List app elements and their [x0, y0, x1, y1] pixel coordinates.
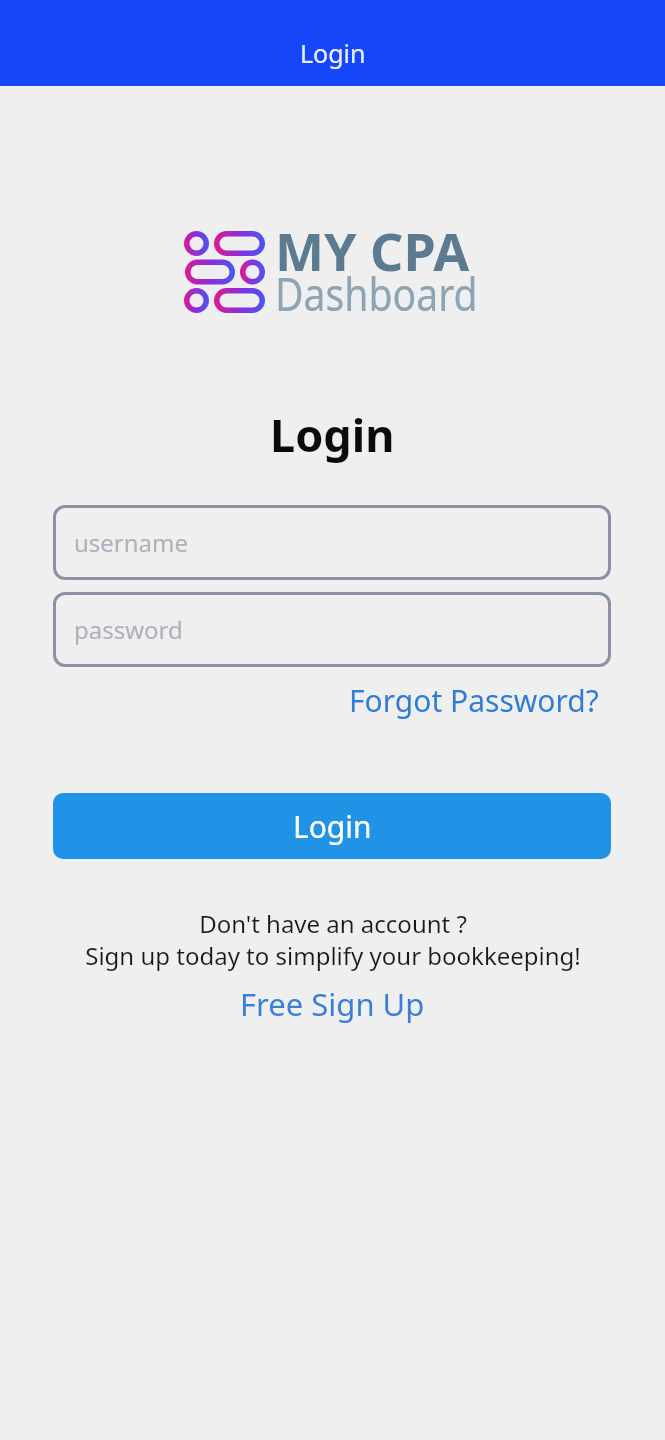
staticText: password — [74, 613, 183, 646]
staticText: Login — [293, 806, 372, 847]
staticText: Login — [270, 404, 395, 465]
button[interactable]: Forgot Password? — [349, 680, 599, 721]
staticText: username — [74, 526, 189, 559]
staticText: Forgot Password? — [349, 680, 599, 721]
staticText: Free Sign Up — [240, 983, 425, 1025]
button[interactable]: Free Sign Up — [240, 983, 425, 1025]
staticText: Dashboard — [275, 263, 478, 324]
button[interactable]: username — [53, 505, 611, 580]
staticText: MY CPA — [275, 215, 470, 286]
button[interactable]: Login — [53, 793, 611, 859]
staticText: Login — [300, 36, 366, 70]
staticText: Don't have an account ? Sign up today to… — [85, 907, 581, 972]
button[interactable]: password — [53, 592, 611, 667]
